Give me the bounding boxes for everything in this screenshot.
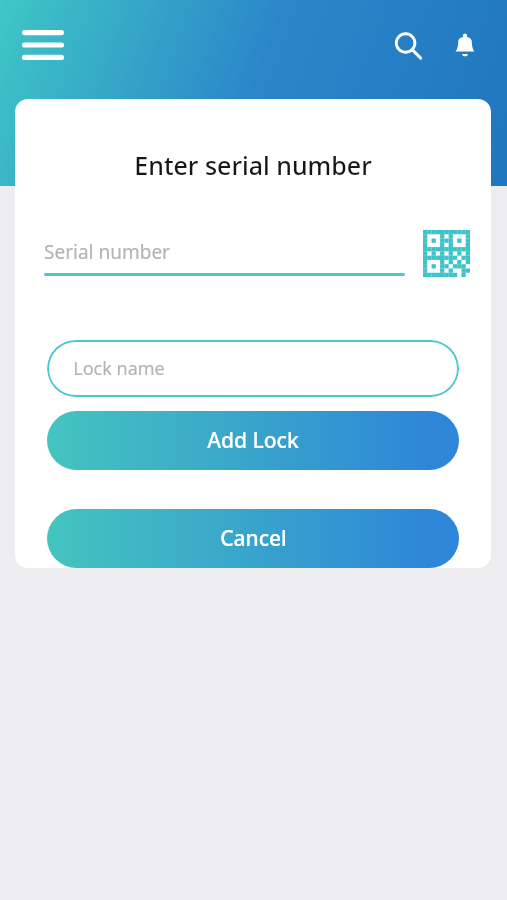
button[interactable]: Add Lock <box>47 411 459 470</box>
button[interactable]: Scan QR code <box>419 226 473 280</box>
button[interactable]: Open navigation menu <box>14 21 72 69</box>
staticText: Enter serial number <box>134 148 372 182</box>
button[interactable]: Search <box>381 20 435 72</box>
staticText: Lock name <box>73 356 165 381</box>
staticText: Cancel <box>220 524 287 553</box>
button[interactable]: Lock name <box>47 340 459 397</box>
staticText: Serial number <box>44 239 170 265</box>
button[interactable]: Serial number <box>44 231 405 276</box>
button[interactable]: Notifications <box>439 20 491 72</box>
button[interactable]: Cancel <box>47 509 459 568</box>
staticText: Add Lock <box>207 426 299 455</box>
